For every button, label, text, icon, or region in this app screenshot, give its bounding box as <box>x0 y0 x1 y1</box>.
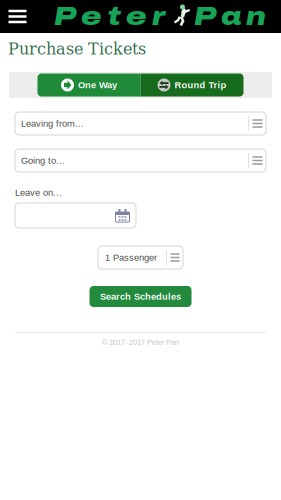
button[interactable]: Going to... <box>15 149 266 172</box>
staticText: Pan <box>194 3 266 30</box>
staticText: Leaving from... <box>21 118 84 129</box>
staticText: Round Trip <box>174 80 226 90</box>
button[interactable]: One Way <box>37 73 140 96</box>
staticText: Search Schedules <box>100 291 181 302</box>
staticText: 1 Passenger <box>105 252 157 263</box>
button[interactable]: Leaving from... <box>15 112 266 135</box>
button[interactable]: Choose departure date <box>15 203 136 228</box>
staticText: Peter <box>54 3 165 30</box>
button[interactable]: Search Schedules <box>89 286 191 307</box>
staticText: One Way <box>78 80 117 90</box>
staticText: Purchase Tickets <box>8 40 146 58</box>
staticText: © 2017- 2017 Peter Pan <box>102 338 179 346</box>
button[interactable]: Round Trip <box>140 73 243 96</box>
button[interactable]: 1 Passenger <box>98 246 183 269</box>
staticText: Leave on... <box>15 187 62 198</box>
staticText: Going to... <box>21 155 65 166</box>
button[interactable]: Menu <box>0 0 35 33</box>
